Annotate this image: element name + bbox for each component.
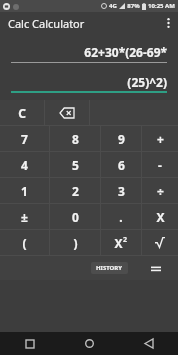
- staticText: 1: [21, 183, 28, 199]
- button[interactable]: ÷: [142, 178, 178, 203]
- staticText: ÷: [157, 183, 164, 199]
- button[interactable]: ): [50, 230, 100, 255]
- button[interactable]: 8: [50, 126, 100, 151]
- staticText: X: [156, 209, 165, 225]
- button[interactable]: HISTORY: [86, 256, 133, 280]
- staticText: 10:25 AM: [148, 2, 175, 10]
- staticText: HISTORY: [96, 264, 123, 272]
- button[interactable]: Backspace: [45, 100, 89, 125]
- button[interactable]: X: [142, 204, 178, 229]
- staticText: 7: [21, 131, 28, 147]
- staticText: .: [119, 209, 123, 225]
- button[interactable]: 0: [50, 204, 100, 229]
- button[interactable]: (: [0, 230, 49, 255]
- staticText: 2: [123, 235, 128, 245]
- button[interactable]: 4: [0, 152, 49, 177]
- button[interactable]: 7: [0, 126, 49, 151]
- button[interactable]: C: [0, 100, 44, 125]
- staticText: 4G: [109, 2, 117, 10]
- staticText: 3: [118, 183, 125, 199]
- button[interactable]: .: [101, 204, 141, 229]
- staticText: +: [157, 131, 164, 147]
- staticText: 5: [72, 157, 79, 173]
- staticText: 2: [72, 183, 79, 199]
- staticText: 8: [72, 131, 79, 147]
- button[interactable]: 5: [50, 152, 100, 177]
- staticText: Calc Calculator: [8, 16, 85, 31]
- button[interactable]: ±: [0, 204, 49, 229]
- button[interactable]: 6: [101, 152, 141, 177]
- button[interactable]: Recent apps: [0, 332, 60, 355]
- staticText: ±: [21, 209, 28, 225]
- staticText: C: [18, 105, 26, 121]
- staticText: 0: [72, 209, 79, 225]
- staticText: (25)^2): [127, 74, 167, 90]
- staticText: 87%: [127, 2, 140, 10]
- button[interactable]: More options: [158, 12, 178, 34]
- button[interactable]: Back: [119, 332, 178, 355]
- staticText: 6: [118, 157, 125, 173]
- staticText: -: [158, 157, 162, 173]
- staticText: 4: [21, 157, 28, 173]
- button[interactable]: Home: [60, 332, 119, 355]
- button[interactable]: Square root: [142, 230, 178, 255]
- button[interactable]: 2: [50, 178, 100, 203]
- button[interactable]: X: [101, 230, 141, 255]
- button[interactable]: -: [142, 152, 178, 177]
- staticText: 9: [118, 131, 125, 147]
- button[interactable]: 9: [101, 126, 141, 151]
- button[interactable]: +: [142, 126, 178, 151]
- staticText: (: [22, 235, 27, 251]
- staticText: 62+30*(26-69*: [84, 44, 167, 60]
- staticText: ): [73, 235, 78, 251]
- staticText: X: [114, 235, 123, 251]
- button[interactable]: 1: [0, 178, 49, 203]
- button[interactable]: Equals: [133, 256, 178, 280]
- button[interactable]: 3: [101, 178, 141, 203]
